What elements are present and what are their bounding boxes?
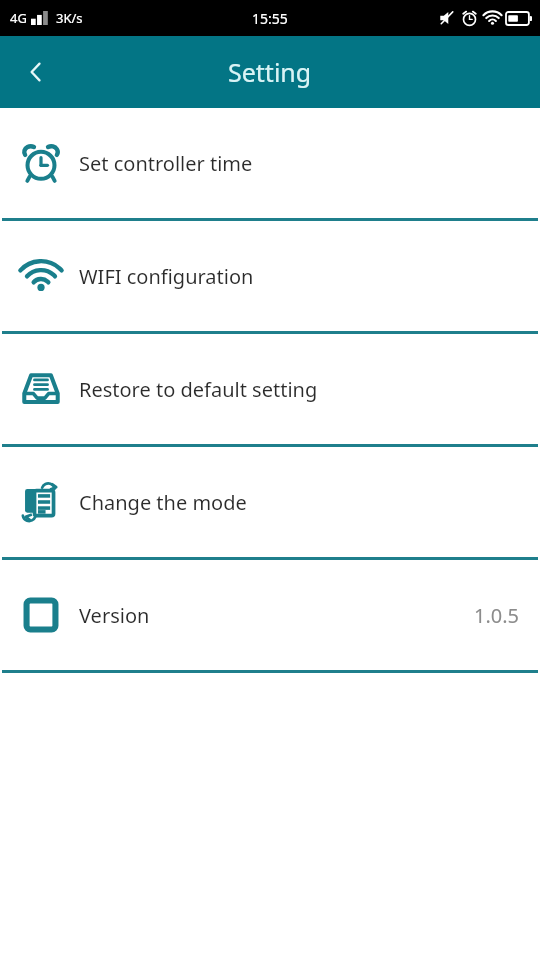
staticText: Setting: [228, 55, 312, 89]
button[interactable]: Set controller time: [0, 108, 540, 218]
staticText: 15:55: [252, 9, 288, 28]
staticText: 3K/s: [56, 9, 83, 27]
button[interactable]: WIFI configuration: [0, 221, 540, 331]
staticText: 4G: [10, 9, 27, 27]
button[interactable]: Change the mode: [0, 447, 540, 557]
staticText: Version: [79, 602, 150, 629]
staticText: Change the mode: [79, 489, 247, 516]
button[interactable]: Back: [12, 48, 60, 96]
button[interactable]: Version: [0, 560, 540, 670]
staticText: Restore to default setting: [79, 376, 318, 403]
staticText: 1.0.5: [474, 602, 520, 629]
staticText: WIFI configuration: [79, 263, 254, 290]
staticText: Set controller time: [79, 150, 253, 177]
button[interactable]: Restore to default setting: [0, 334, 540, 444]
